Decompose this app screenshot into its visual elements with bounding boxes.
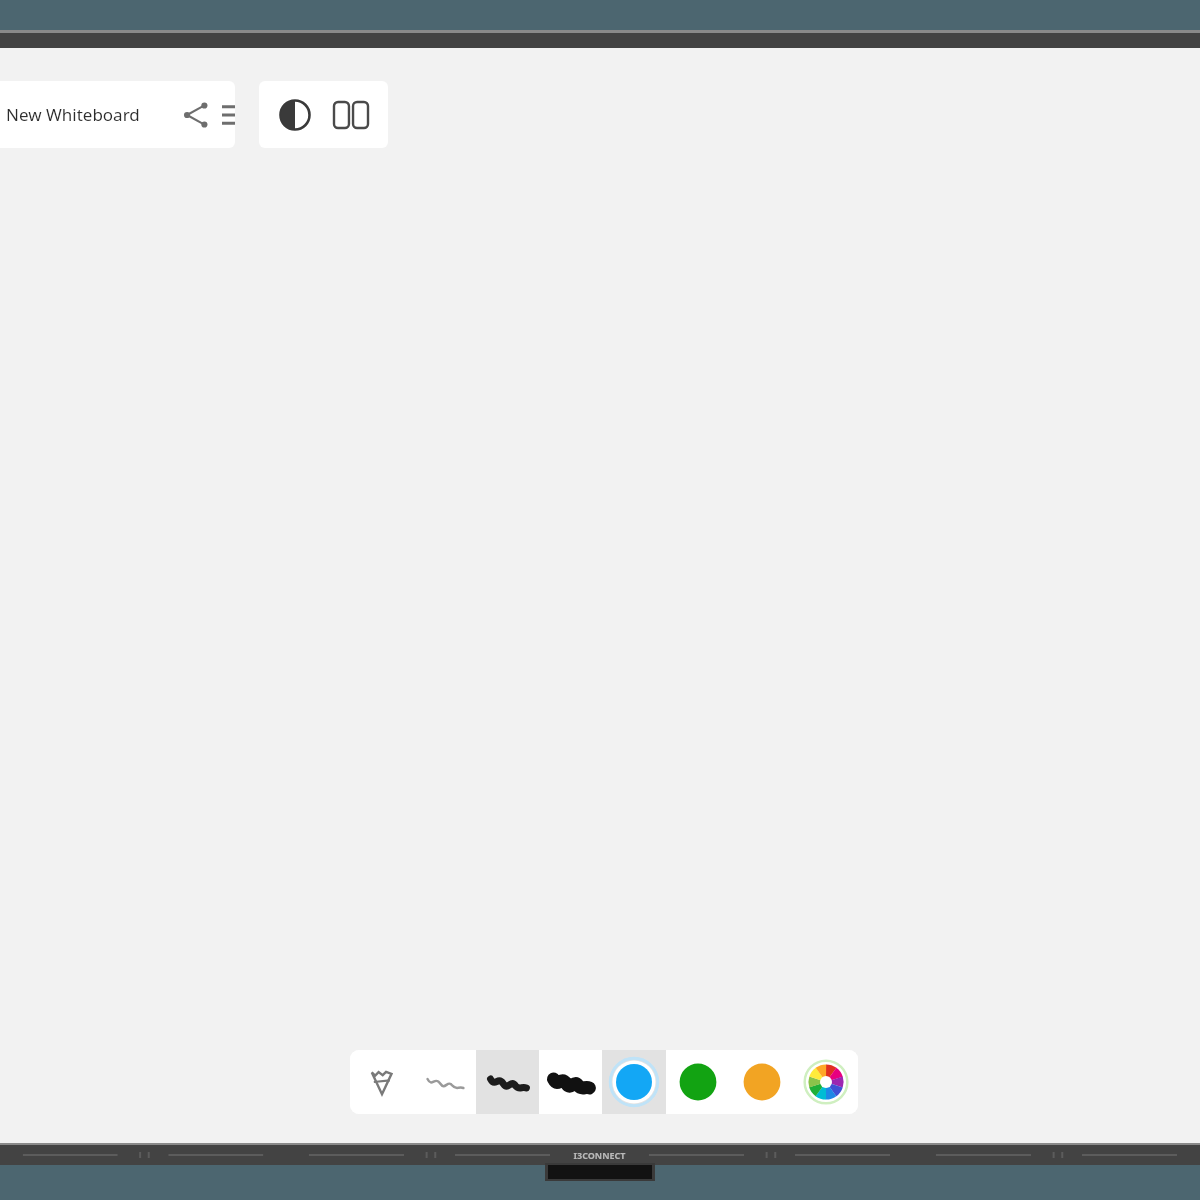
button[interactable]: Menu — [222, 89, 235, 141]
button[interactable]: Green colour — [666, 1050, 730, 1114]
button[interactable]: Medium stroke — [476, 1050, 539, 1114]
button[interactable]: New Whiteboard — [2, 95, 144, 134]
button[interactable]: Contrast — [267, 87, 323, 143]
button[interactable]: Blue colour — [602, 1050, 666, 1114]
staticText: New Whiteboard — [6, 103, 140, 126]
button[interactable]: Thin stroke — [413, 1050, 476, 1114]
staticText: I3CONNECT — [573, 1149, 626, 1161]
button[interactable]: Eraser — [350, 1050, 413, 1114]
button[interactable]: More colours — [794, 1050, 858, 1114]
button[interactable]: Share — [170, 89, 222, 141]
button[interactable]: Thick stroke — [539, 1050, 602, 1114]
button[interactable]: Orange colour — [730, 1050, 794, 1114]
button[interactable]: Split screen — [323, 87, 379, 143]
